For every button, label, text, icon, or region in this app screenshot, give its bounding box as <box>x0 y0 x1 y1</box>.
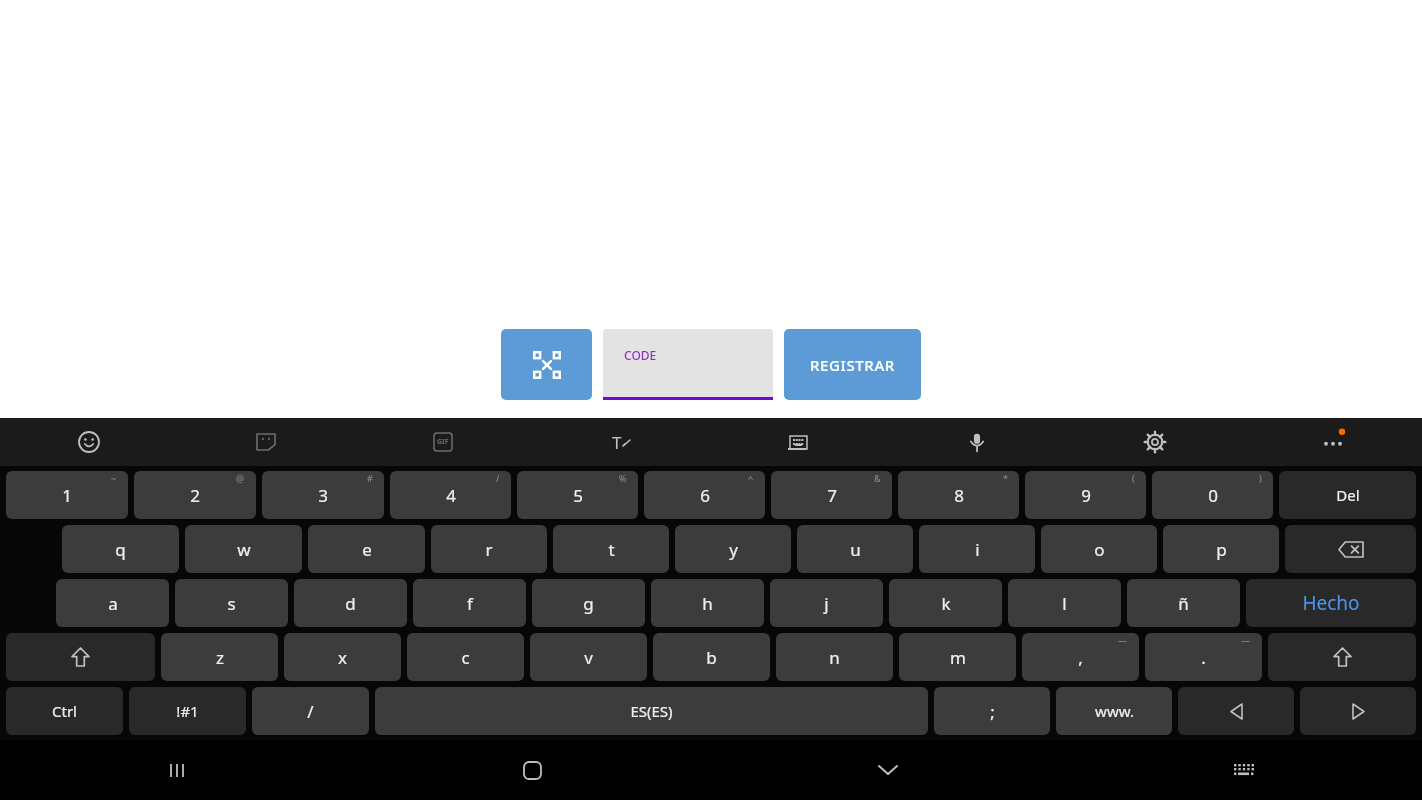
staticText: h <box>702 592 713 615</box>
button[interactable]: Settings <box>1066 418 1244 466</box>
staticText: 7 <box>827 484 837 507</box>
staticText: f <box>467 592 473 615</box>
button[interactable]: CODE <box>603 329 773 400</box>
button[interactable]: w <box>185 525 302 573</box>
button[interactable]: x <box>284 633 401 681</box>
button[interactable]: / <box>252 687 369 735</box>
button[interactable]: 4 <box>390 471 511 519</box>
button[interactable]: Hide keyboard <box>710 740 1066 800</box>
button[interactable]: GIF <box>354 418 532 466</box>
button[interactable]: Home <box>355 740 710 800</box>
staticText: GIF <box>437 437 449 447</box>
staticText: z <box>216 646 224 669</box>
staticText: / <box>307 700 314 723</box>
button[interactable]: Voice input <box>888 418 1066 466</box>
staticText: ñ <box>1178 592 1189 615</box>
staticText: q <box>115 538 126 561</box>
button[interactable]: ES(ES) <box>375 687 928 735</box>
staticText: k <box>941 592 951 615</box>
staticText: ES(ES) <box>630 701 673 721</box>
button[interactable]: 3 <box>262 471 384 519</box>
staticText: x <box>338 646 347 669</box>
button[interactable]: u <box>797 525 913 573</box>
button[interactable]: g <box>532 579 645 627</box>
button[interactable]: m <box>899 633 1016 681</box>
staticText: s <box>227 592 236 615</box>
button[interactable]: !#1 <box>129 687 246 735</box>
staticText: # <box>367 472 373 484</box>
button[interactable]: f <box>413 579 526 627</box>
button[interactable]: k <box>889 579 1002 627</box>
button[interactable]: 5 <box>517 471 638 519</box>
button[interactable]: . <box>1145 633 1262 681</box>
button[interactable]: Backspace <box>1285 525 1416 573</box>
staticText: d <box>345 592 356 615</box>
staticText: @ <box>236 472 245 484</box>
button[interactable]: d <box>294 579 407 627</box>
button[interactable]: Emoji <box>0 418 177 466</box>
button[interactable]: 6 <box>644 471 765 519</box>
button[interactable]: , <box>1022 633 1139 681</box>
button[interactable]: t <box>553 525 669 573</box>
staticText: 4 <box>446 484 456 507</box>
button[interactable]: Del <box>1279 471 1416 519</box>
staticText: e <box>362 538 372 561</box>
button[interactable]: n <box>776 633 893 681</box>
button[interactable]: o <box>1041 525 1157 573</box>
staticText: ; <box>990 700 995 723</box>
button[interactable]: b <box>653 633 770 681</box>
button[interactable]: 2 <box>134 471 256 519</box>
button[interactable]: More options <box>1244 418 1422 466</box>
button[interactable]: 0 <box>1152 471 1273 519</box>
button[interactable]: Hecho <box>1246 579 1416 627</box>
button[interactable]: q <box>62 525 179 573</box>
button[interactable]: Shift <box>1268 633 1416 681</box>
button[interactable]: Handwriting <box>532 418 710 466</box>
staticText: & <box>874 472 881 484</box>
staticText: 2 <box>190 484 200 507</box>
button[interactable]: 8 <box>898 471 1019 519</box>
staticText: — <box>1241 634 1251 646</box>
staticText: ( <box>1132 472 1135 484</box>
staticText: 0 <box>1208 484 1218 507</box>
button[interactable]: 9 <box>1025 471 1146 519</box>
button[interactable]: h <box>651 579 764 627</box>
staticText: 9 <box>1081 484 1091 507</box>
button[interactable]: www. <box>1056 687 1172 735</box>
button[interactable]: Recent apps <box>0 740 355 800</box>
button[interactable]: ; <box>934 687 1050 735</box>
button[interactable]: e <box>308 525 425 573</box>
button[interactable]: i <box>919 525 1035 573</box>
button[interactable]: p <box>1163 525 1279 573</box>
staticText: / <box>496 472 500 484</box>
button[interactable]: Move cursor right <box>1300 687 1416 735</box>
staticText: 1 <box>62 484 72 507</box>
button[interactable]: y <box>675 525 791 573</box>
button[interactable]: v <box>530 633 647 681</box>
button[interactable]: Scan QR code <box>501 329 592 400</box>
button[interactable]: Ctrl <box>6 687 123 735</box>
button[interactable]: Change keyboard <box>1066 740 1422 800</box>
staticText: 3 <box>318 484 328 507</box>
button[interactable]: z <box>161 633 278 681</box>
button[interactable]: Keyboard modes <box>710 418 888 466</box>
button[interactable]: ñ <box>1127 579 1240 627</box>
staticText: c <box>461 646 470 669</box>
staticText: 6 <box>700 484 710 507</box>
button[interactable]: 7 <box>771 471 892 519</box>
button[interactable]: c <box>407 633 524 681</box>
button[interactable]: r <box>431 525 547 573</box>
staticText: t <box>608 538 615 561</box>
button[interactable]: REGISTRAR <box>784 329 921 400</box>
staticText: w <box>237 538 251 561</box>
button[interactable]: Shift <box>6 633 155 681</box>
button[interactable]: 1 <box>6 471 128 519</box>
button[interactable]: l <box>1008 579 1121 627</box>
staticText: 8 <box>954 484 964 507</box>
button[interactable]: Stickers <box>177 418 354 466</box>
button[interactable]: a <box>56 579 169 627</box>
staticText: Del <box>1336 485 1360 505</box>
button[interactable]: s <box>175 579 288 627</box>
button[interactable]: j <box>770 579 883 627</box>
button[interactable]: Move cursor left <box>1178 687 1294 735</box>
